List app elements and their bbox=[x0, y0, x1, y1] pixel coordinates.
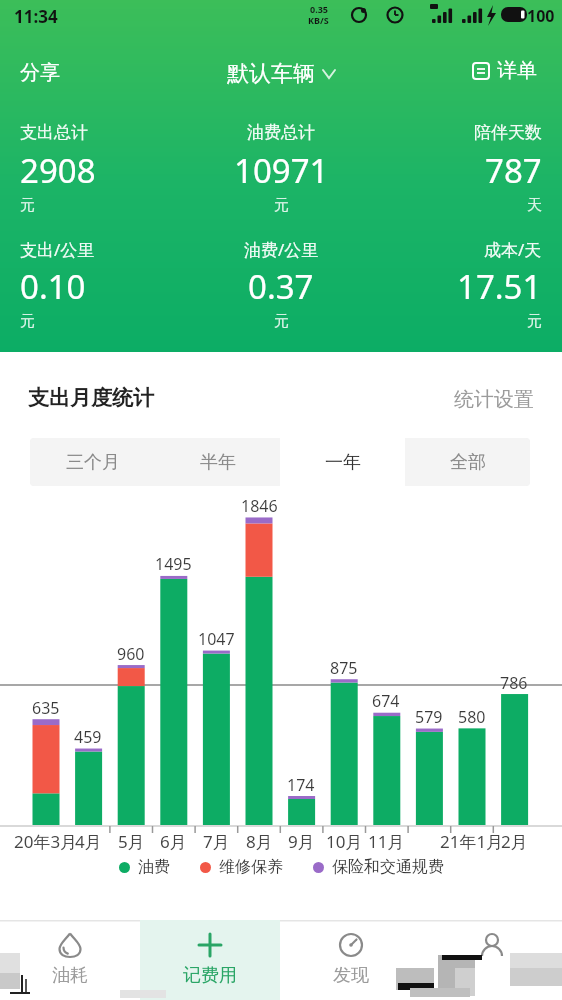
staticText: 0.10 bbox=[20, 264, 86, 309]
staticText: KB/S bbox=[308, 14, 329, 26]
staticText: 787 bbox=[485, 148, 542, 193]
staticText: 油费总计 bbox=[247, 122, 315, 143]
staticText: 一年 bbox=[325, 451, 361, 474]
staticText: 10971 bbox=[234, 148, 329, 193]
staticText: 全部 bbox=[450, 451, 486, 474]
staticText: 6月 bbox=[160, 830, 187, 853]
staticText: 786 bbox=[500, 672, 528, 694]
staticText: 维修保养 bbox=[219, 857, 283, 877]
staticText: 油费/公里 bbox=[244, 238, 319, 261]
staticText: 默认车辆 bbox=[227, 60, 315, 88]
staticText: 支出月度统计 bbox=[28, 385, 154, 411]
button[interactable]: 一年 bbox=[280, 438, 405, 486]
button[interactable]: 统计设置 bbox=[362, 387, 534, 412]
staticText: 记费用 bbox=[183, 964, 237, 987]
staticText: 10月 bbox=[326, 830, 363, 853]
button[interactable]: 详单 bbox=[466, 52, 543, 89]
staticText: 元 bbox=[20, 196, 35, 215]
staticText: 支出/公里 bbox=[20, 238, 95, 261]
staticText: 459 bbox=[74, 726, 102, 748]
staticText: 成本/天 bbox=[484, 238, 542, 261]
staticText: 21年1月 bbox=[440, 830, 504, 853]
staticText: 2月 bbox=[501, 830, 528, 853]
staticText: 详单 bbox=[497, 58, 537, 83]
staticText: 0.35 bbox=[310, 3, 328, 15]
staticText: 天 bbox=[527, 196, 542, 215]
staticText: 960 bbox=[117, 643, 145, 665]
staticText: 1047 bbox=[198, 628, 235, 650]
staticText: 7月 bbox=[203, 830, 230, 853]
staticText: 1495 bbox=[155, 553, 192, 575]
staticText: 8月 bbox=[246, 830, 273, 853]
button[interactable]: 发现 bbox=[280, 920, 421, 1000]
staticText: 半年 bbox=[200, 451, 236, 474]
button[interactable]: 半年 bbox=[155, 438, 280, 486]
staticText: 17.51 bbox=[457, 264, 542, 309]
staticText: 20年3月 bbox=[14, 830, 78, 853]
staticText: 11:34 bbox=[14, 5, 58, 28]
staticText: 元 bbox=[274, 312, 289, 331]
button[interactable] bbox=[421, 920, 562, 1000]
staticText: 579 bbox=[415, 706, 443, 728]
staticText: 2908 bbox=[20, 148, 96, 193]
button[interactable]: 三个月 bbox=[30, 438, 155, 486]
staticText: 分享 bbox=[20, 60, 60, 85]
button[interactable]: 默认车辆 bbox=[221, 52, 341, 96]
staticText: 635 bbox=[32, 697, 60, 719]
staticText: 9月 bbox=[288, 830, 315, 853]
staticText: 100 bbox=[527, 5, 555, 27]
staticText: 支出总计 bbox=[20, 122, 88, 143]
staticText: 1846 bbox=[241, 495, 278, 517]
staticText: 发现 bbox=[333, 964, 369, 987]
staticText: 元 bbox=[274, 196, 289, 215]
staticText: 统计设置 bbox=[454, 387, 534, 412]
staticText: 5月 bbox=[118, 830, 145, 853]
staticText: 674 bbox=[372, 690, 400, 712]
staticText: 4月 bbox=[75, 830, 102, 853]
staticText: 11月 bbox=[368, 830, 405, 853]
staticText: 580 bbox=[458, 706, 486, 728]
staticText: 油费 bbox=[138, 857, 170, 877]
button[interactable]: 油耗 bbox=[0, 920, 140, 1000]
staticText: 元 bbox=[20, 312, 35, 331]
button[interactable]: 记费用 bbox=[140, 920, 280, 1000]
staticText: 陪伴天数 bbox=[474, 122, 542, 143]
staticText: 875 bbox=[330, 657, 358, 679]
staticText: 三个月 bbox=[66, 451, 120, 474]
button[interactable]: 全部 bbox=[405, 438, 530, 486]
staticText: 0.37 bbox=[248, 264, 314, 309]
staticText: 元 bbox=[527, 312, 542, 331]
staticText: 174 bbox=[287, 774, 315, 796]
staticText: 油耗 bbox=[52, 964, 88, 987]
staticText: 保险和交通规费 bbox=[332, 857, 444, 877]
button[interactable]: 分享 bbox=[12, 52, 68, 93]
